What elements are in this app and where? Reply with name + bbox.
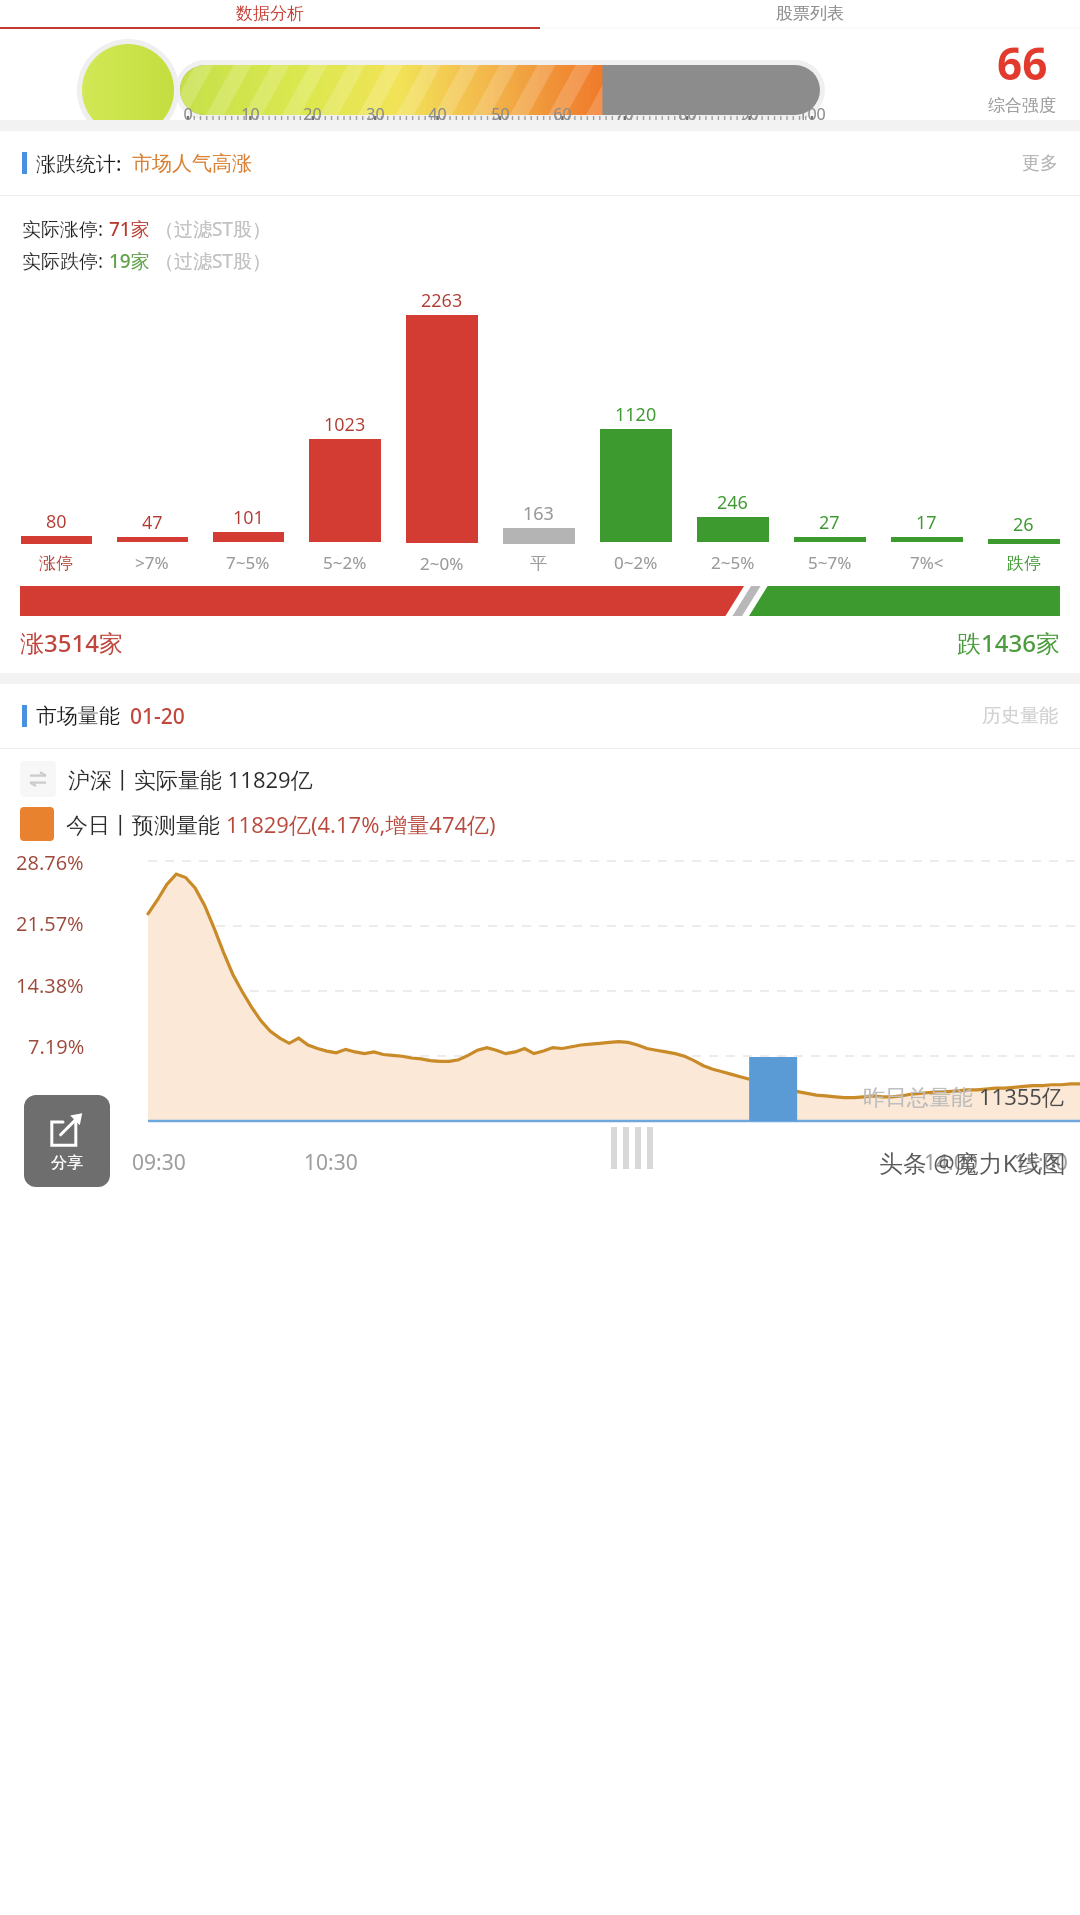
staticText: 昨日总量能 (863, 1081, 979, 1111)
staticText: 66 (997, 33, 1048, 93)
button[interactable]: 101 (200, 288, 296, 574)
staticText: 10 (241, 103, 260, 125)
staticText: 0 (52, 1094, 64, 1121)
button[interactable]: 163 (490, 288, 587, 574)
staticText: 0 (183, 103, 193, 125)
staticText: 90 (740, 103, 759, 125)
button[interactable]: 1023 (296, 288, 393, 574)
staticText: 40 (428, 103, 447, 125)
button[interactable]: 80 (8, 288, 104, 574)
staticText: 101 (233, 505, 264, 530)
button[interactable]: 分享 (24, 1095, 110, 1187)
staticText: 50 (491, 103, 510, 125)
staticText: 11829亿(4.17%,增量474亿) (226, 809, 496, 839)
button[interactable]: 47 (104, 288, 200, 574)
button[interactable]: 17 (878, 288, 975, 574)
staticText: 股票列表 (776, 3, 844, 24)
button[interactable]: 2263 (393, 288, 490, 574)
staticText: 2263 (421, 288, 463, 313)
button[interactable]: 246 (684, 288, 781, 574)
staticText: 涨3514家 (20, 626, 123, 659)
staticText: 20 (303, 103, 322, 125)
staticText: 2~5% (711, 551, 755, 574)
staticText: 5~7% (808, 551, 852, 574)
staticText: 市场量能 (36, 703, 120, 729)
staticText: 80 (678, 103, 697, 125)
staticText: 涨停 (39, 553, 73, 574)
staticText: 实际跌停: (22, 248, 109, 274)
staticText: 09:30 (132, 1148, 186, 1177)
staticText: 60 (553, 103, 572, 125)
button[interactable]: 26 (975, 288, 1072, 574)
staticText: 跌1436家 (957, 626, 1060, 659)
staticText: 14.38% (16, 972, 84, 999)
staticText: 15:00 (1014, 1148, 1068, 1177)
button[interactable]: 数据分析 (0, 0, 540, 27)
button[interactable]: 股票列表 (540, 0, 1080, 27)
staticText: 1120 (615, 402, 657, 427)
staticText: 100 (798, 103, 826, 125)
staticText: 246 (717, 490, 748, 515)
button[interactable]: 1120 (587, 288, 684, 574)
staticText: 26 (1013, 512, 1034, 537)
staticText: 分享 (51, 1153, 83, 1173)
other: 沪深实际量能 (20, 761, 56, 797)
staticText: 27 (819, 510, 840, 535)
staticText: 2~0% (420, 552, 464, 574)
staticText: 17 (916, 510, 937, 535)
staticText: 19家 (109, 248, 150, 274)
staticText: 01-20 (130, 702, 185, 731)
staticText: 1023 (324, 412, 366, 437)
staticText: 更多 (1022, 152, 1058, 175)
staticText: 28.76% (16, 849, 84, 876)
staticText: 数据分析 (236, 3, 304, 24)
staticText: 沪深丨实际量能 11829亿 (68, 764, 313, 794)
staticText: 跌停 (1007, 553, 1041, 574)
staticText: 14:00 (924, 1148, 978, 1177)
staticText: 70 (615, 103, 634, 125)
staticText: 163 (523, 501, 554, 526)
button[interactable]: 市场量能 (0, 684, 1080, 748)
button[interactable]: 27 (781, 288, 878, 574)
staticText: 80 (46, 509, 67, 534)
staticText: （过滤ST股） (150, 216, 271, 242)
staticText: 47 (142, 510, 163, 535)
staticText: 11355亿 (979, 1081, 1064, 1111)
staticText: 30 (366, 103, 385, 125)
staticText: （过滤ST股） (150, 248, 271, 274)
staticText: 历史量能 (982, 704, 1058, 728)
button[interactable]: 涨跌统计: (0, 131, 1080, 195)
staticText: 实际涨停: (22, 216, 109, 242)
staticText: 头条 @魔力K线图 (879, 1146, 1066, 1179)
staticText: 71家 (109, 216, 150, 242)
staticText: 综合强度 (988, 95, 1056, 116)
staticText: 7.19% (28, 1033, 85, 1060)
staticText: 10:30 (304, 1148, 358, 1177)
staticText: 7~5% (226, 551, 270, 574)
staticText: 5~2% (323, 551, 367, 574)
staticText: 7%< (910, 551, 944, 574)
staticText: 21.57% (16, 910, 84, 937)
staticText: 平 (530, 553, 547, 574)
staticText: 今日丨预测量能 (66, 809, 226, 839)
staticText: 涨跌统计: (36, 150, 122, 177)
staticText: >7% (135, 551, 169, 574)
staticText: 0~2% (614, 551, 658, 574)
staticText: 市场人气高涨 (132, 151, 252, 176)
